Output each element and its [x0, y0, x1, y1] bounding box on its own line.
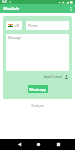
button[interactable]: Phone: [26, 21, 69, 30]
staticText: +91: [15, 24, 20, 28]
staticText: Attach Contact: [44, 75, 62, 79]
button[interactable]: Whatsapp: [28, 85, 48, 93]
staticText: Whatsapp: [29, 87, 47, 92]
staticText: Thank you: [0, 104, 75, 108]
button[interactable]: +91: [6, 21, 22, 30]
staticText: 9:41: [2, 0, 8, 4]
button[interactable]: Message: [6, 34, 69, 71]
button[interactable]: Attach Contact: [43, 75, 69, 79]
staticText: WhatSafe: [3, 6, 20, 11]
button[interactable]: More options: [67, 4, 74, 13]
button[interactable]: Home: [28, 139, 48, 150]
staticText: Message: [8, 36, 22, 40]
button[interactable]: Back: [9, 139, 29, 150]
button[interactable]: Recent apps: [48, 139, 68, 150]
staticText: Phone: [28, 24, 38, 28]
